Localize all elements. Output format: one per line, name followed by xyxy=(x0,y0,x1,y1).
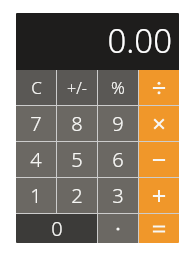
staticText: 9 xyxy=(112,110,124,137)
staticText: 8 xyxy=(71,110,83,137)
button[interactable]: Divide xyxy=(139,70,179,105)
staticText: C xyxy=(31,76,42,99)
button[interactable]: 4 xyxy=(16,142,56,177)
button[interactable]: +/- xyxy=(57,70,97,105)
button[interactable]: 8 xyxy=(57,106,97,141)
button[interactable]: Decimal point xyxy=(98,214,138,243)
staticText: 6 xyxy=(112,146,124,173)
button[interactable]: C xyxy=(16,70,56,105)
button[interactable]: 2 xyxy=(57,178,97,213)
button[interactable]: 9 xyxy=(98,106,138,141)
button[interactable]: 5 xyxy=(57,142,97,177)
staticText: % xyxy=(111,76,125,99)
button[interactable]: 7 xyxy=(16,106,56,141)
staticText: +/- xyxy=(67,77,87,99)
button[interactable]: Plus xyxy=(139,178,179,213)
staticText: 5 xyxy=(71,146,83,173)
button[interactable]: % xyxy=(98,70,138,105)
button[interactable]: Multiply xyxy=(139,106,179,141)
staticText: 4 xyxy=(30,146,42,173)
button[interactable]: 6 xyxy=(98,142,138,177)
button[interactable]: Minus xyxy=(139,142,179,177)
staticText: 7 xyxy=(30,110,42,137)
staticText: 1 xyxy=(30,182,42,209)
staticText: 3 xyxy=(112,182,124,209)
button[interactable]: Equals xyxy=(139,214,179,243)
staticText: 0 xyxy=(51,215,63,242)
button[interactable]: 3 xyxy=(98,178,138,213)
button[interactable]: 0 xyxy=(16,214,97,243)
staticText: 2 xyxy=(71,182,83,209)
button[interactable]: 1 xyxy=(16,178,56,213)
staticText: 0.00 xyxy=(107,18,172,63)
